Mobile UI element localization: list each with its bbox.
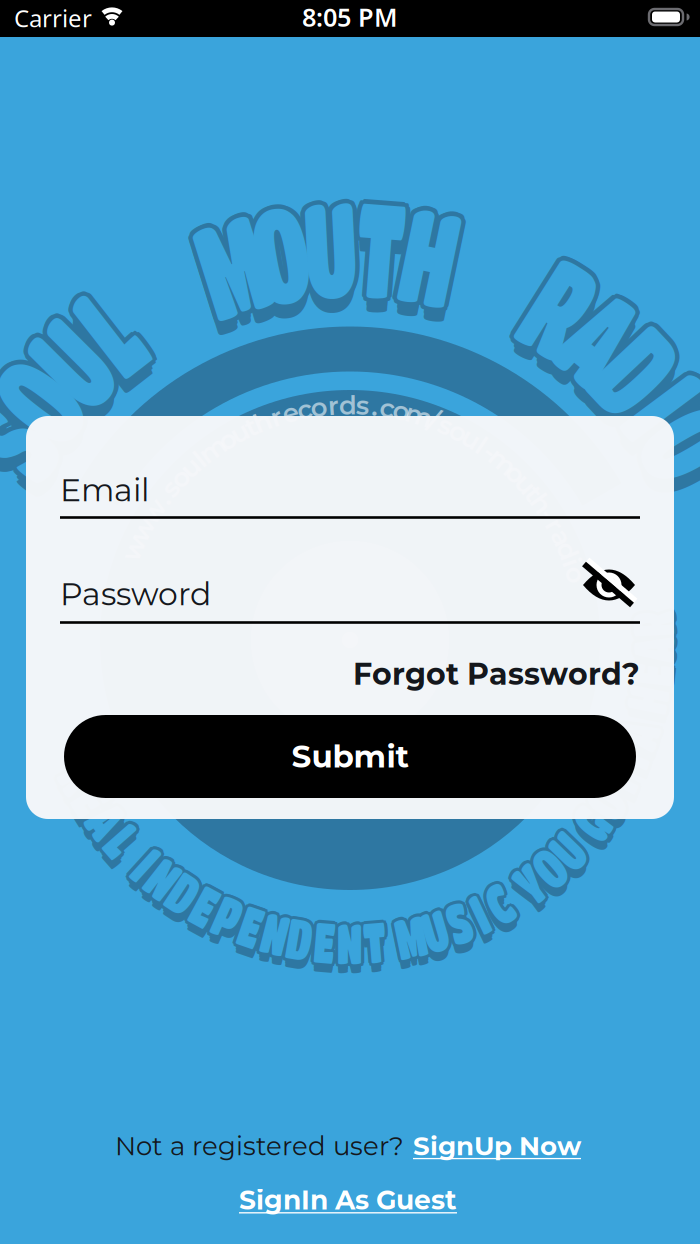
- staticText: O: [227, 172, 327, 323]
- staticText: O: [641, 361, 700, 512]
- staticText: Y: [512, 849, 551, 913]
- staticText: T: [357, 909, 393, 973]
- staticText: I: [643, 338, 690, 489]
- staticText: R: [513, 230, 608, 381]
- button[interactable]: Submit: [64, 715, 636, 798]
- staticText: E: [631, 645, 665, 709]
- staticText: D: [590, 294, 686, 445]
- staticText: I: [640, 325, 687, 476]
- staticText: C: [483, 871, 520, 935]
- staticText: E: [304, 909, 338, 973]
- staticText: U: [412, 895, 453, 960]
- staticText: T: [360, 909, 396, 973]
- staticText: A: [553, 274, 650, 425]
- staticText: E: [188, 876, 222, 940]
- staticText: R: [59, 743, 99, 807]
- staticText: R: [61, 749, 101, 813]
- staticText: O: [0, 324, 91, 475]
- staticText: S: [0, 380, 52, 531]
- staticText: U: [550, 818, 591, 882]
- staticText: N: [143, 849, 184, 913]
- button[interactable]: Password: [60, 562, 640, 626]
- staticText: O: [645, 362, 700, 513]
- staticText: A: [85, 786, 126, 850]
- staticText: T: [338, 180, 424, 331]
- staticText: I: [137, 837, 157, 901]
- staticText: E: [234, 893, 268, 957]
- staticText: I: [469, 878, 489, 942]
- staticText: R: [61, 742, 101, 806]
- staticText: I: [469, 890, 489, 954]
- staticText: E: [308, 918, 342, 982]
- staticText: E: [234, 902, 268, 966]
- staticText: H: [626, 667, 667, 731]
- staticText: H: [387, 178, 483, 329]
- staticText: R: [632, 601, 672, 666]
- staticText: T: [602, 746, 638, 810]
- staticText: N: [143, 855, 184, 919]
- staticText: O: [528, 838, 570, 902]
- staticText: E: [237, 893, 271, 957]
- staticText: O: [641, 375, 700, 526]
- staticText: O: [227, 179, 327, 330]
- staticText: E: [185, 873, 219, 937]
- staticText: M: [386, 907, 435, 971]
- staticText: L: [106, 810, 136, 874]
- staticText: U: [18, 283, 114, 434]
- staticText: U: [282, 170, 378, 321]
- staticText: T: [338, 175, 424, 326]
- staticText: c: [380, 392, 395, 424]
- staticText: T: [599, 748, 635, 812]
- staticText: S: [0, 369, 55, 520]
- button[interactable]: Show password: [582, 562, 638, 608]
- staticText: O: [0, 321, 90, 472]
- staticText: O: [0, 328, 87, 480]
- staticText: U: [26, 286, 122, 437]
- button[interactable]: Forgot Password?: [60, 656, 640, 692]
- staticText: T: [357, 906, 393, 970]
- staticText: E: [76, 770, 110, 834]
- staticText: N: [146, 846, 187, 910]
- staticText: O: [586, 768, 628, 832]
- staticText: S: [0, 361, 52, 512]
- button[interactable]: SignUp Now: [413, 1130, 581, 1162]
- staticText: M: [174, 197, 290, 348]
- staticText: r: [549, 509, 560, 540]
- staticText: M: [177, 191, 293, 342]
- staticText: N: [143, 842, 184, 907]
- staticText: E: [310, 907, 344, 971]
- staticText: E: [633, 646, 667, 710]
- button[interactable]: SignIn As Guest: [239, 1184, 457, 1216]
- staticText: R: [513, 226, 608, 377]
- staticText: SignUp Now: [413, 1130, 581, 1162]
- staticText: O: [586, 772, 628, 836]
- button[interactable]: Email: [60, 458, 640, 522]
- staticText: U: [412, 900, 453, 964]
- staticText: C: [480, 868, 517, 932]
- staticText: O: [531, 835, 573, 899]
- staticText: M: [174, 183, 290, 334]
- staticText: A: [629, 615, 670, 679]
- staticText: D: [277, 903, 318, 967]
- staticText: M: [178, 188, 294, 339]
- staticText: N: [143, 849, 184, 913]
- staticText: E: [633, 639, 667, 703]
- staticText: A: [556, 256, 653, 407]
- staticText: R: [635, 592, 675, 657]
- staticText: T: [608, 728, 644, 792]
- staticText: T: [354, 907, 390, 971]
- staticText: P: [206, 882, 246, 946]
- staticText: U: [414, 901, 455, 965]
- staticText: O: [0, 338, 87, 489]
- staticText: L: [67, 253, 139, 404]
- staticText: T: [357, 918, 393, 982]
- staticText: S: [442, 892, 479, 956]
- staticText: H: [386, 181, 482, 332]
- staticText: D: [164, 866, 205, 930]
- staticText: G: [568, 791, 606, 855]
- staticText: w: [131, 513, 155, 545]
- staticText: C: [478, 868, 515, 933]
- staticText: A: [87, 785, 128, 849]
- staticText: U: [282, 179, 378, 330]
